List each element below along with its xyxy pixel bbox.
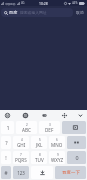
- staticText: 2: [26, 123, 28, 127]
- staticText: 10:28: [39, 1, 48, 6]
- staticText: 5: [39, 138, 41, 142]
- staticText: 123: [17, 170, 25, 176]
- staticText: 百度一下: [62, 170, 80, 176]
- staticText: 7: [20, 153, 22, 157]
- staticText: 中国移动: [5, 2, 16, 5]
- staticText: DEF: [45, 127, 54, 133]
- staticText: !: [5, 154, 7, 161]
- staticText: PQRS: [15, 157, 27, 163]
- button[interactable]: 3: [39, 121, 60, 134]
- button[interactable]: 8: [31, 151, 47, 164]
- staticText: 6: [56, 138, 58, 142]
- staticText: 4: [21, 138, 23, 142]
- staticText: JKL: [36, 142, 43, 148]
- button[interactable]: 取消: [74, 8, 86, 17]
- button[interactable]: 9: [49, 151, 65, 164]
- staticText: ?: [5, 139, 8, 146]
- staticText: 取消: [76, 10, 84, 15]
- button[interactable]: 百度一下: [55, 166, 86, 179]
- button[interactable]: ?: [1, 136, 11, 149]
- button[interactable]: 4: [13, 136, 29, 149]
- button[interactable]: 7: [13, 151, 29, 164]
- button[interactable]: 6: [49, 136, 65, 149]
- staticText: 4G: [21, 1, 25, 5]
- button[interactable]: !: [1, 151, 11, 164]
- button[interactable]: 123: [13, 166, 29, 179]
- button[interactable]: Clipboard: [39, 110, 49, 120]
- staticText: GHI: [17, 142, 26, 148]
- staticText: 0: [75, 154, 79, 161]
- staticText: 百度: [9, 10, 18, 15]
- staticText: WXYZ: [51, 157, 64, 163]
- staticText: 3: [49, 123, 51, 127]
- staticText: 8: [39, 153, 41, 157]
- button[interactable]: Hide keyboard: [75, 110, 85, 120]
- button[interactable]: 百度: [1, 8, 73, 17]
- button[interactable]: 1: [1, 121, 14, 134]
- staticText: TUV: [35, 157, 44, 163]
- staticText: 1: [6, 124, 10, 131]
- staticText: 搜索或输入网址: [20, 10, 47, 15]
- button[interactable]: Move cursor: [59, 110, 69, 120]
- button[interactable]: Symbols: [67, 136, 86, 149]
- staticText: ABC: [22, 127, 31, 133]
- button[interactable]: Settings: [20, 110, 30, 120]
- button[interactable]: 5: [31, 136, 47, 149]
- button[interactable]: Space: [31, 166, 53, 179]
- button[interactable]: #: [1, 166, 11, 179]
- staticText: MNO: [51, 142, 63, 148]
- button[interactable]: 2: [16, 121, 37, 134]
- button[interactable]: 0: [67, 151, 86, 164]
- staticText: 9: [57, 153, 59, 157]
- button[interactable]: Emoji: [2, 110, 12, 120]
- staticText: 44%: [72, 1, 78, 5]
- staticText: #: [4, 169, 8, 176]
- button[interactable]: Backspace: [62, 121, 86, 134]
